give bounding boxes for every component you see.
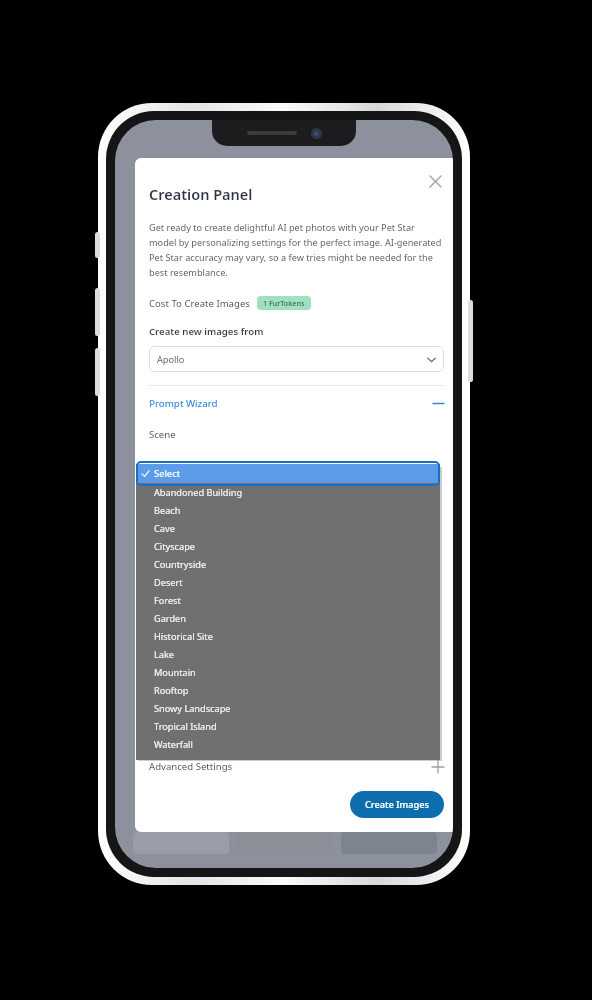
staticText: Scene (149, 428, 176, 441)
button[interactable]: Lake (136, 645, 440, 663)
staticText: Waterfall (154, 738, 193, 751)
staticText: Create Images (365, 798, 429, 811)
staticText: Countryside (154, 558, 207, 571)
staticText: Create new images from (149, 325, 264, 338)
staticText: Lake (154, 648, 175, 661)
button[interactable]: Tropical Island (136, 717, 440, 735)
staticText: Apollo (157, 353, 185, 366)
staticText: Garden (154, 612, 186, 625)
staticText: Forest (154, 594, 181, 607)
button[interactable]: Desert (136, 573, 440, 591)
staticText: Cityscape (154, 540, 195, 553)
staticText: 1 FurTokens (263, 298, 305, 308)
button[interactable]: Waterfall (136, 735, 440, 753)
staticText: Select (154, 467, 181, 480)
button[interactable]: Advanced Settings (149, 760, 444, 773)
button[interactable]: Countryside (136, 555, 440, 573)
button[interactable]: Apollo (149, 346, 444, 372)
staticText: Abandoned Building (154, 486, 243, 499)
staticText: Desert (154, 576, 183, 589)
button[interactable]: Snowy Landscape (136, 699, 440, 717)
staticText: Creation Panel (149, 184, 253, 204)
button[interactable]: Mountain (136, 663, 440, 681)
button[interactable]: Prompt Wizard (149, 397, 444, 410)
staticText: Cost To Create Images (149, 297, 250, 310)
button[interactable]: Rooftop (136, 681, 440, 699)
staticText: Snowy Landscape (154, 702, 231, 715)
staticText: Historical Site (154, 630, 213, 643)
staticText: Tropical Island (154, 720, 217, 733)
staticText: Get ready to create delightful AI pet ph… (149, 221, 444, 279)
staticText: Advanced Settings (149, 760, 233, 773)
button[interactable]: Forest (136, 591, 440, 609)
button[interactable]: Select (136, 464, 440, 483)
button[interactable]: Create Images (350, 791, 444, 818)
staticText: Prompt Wizard (149, 397, 218, 410)
button[interactable]: Close (420, 166, 450, 196)
staticText: Mountain (154, 666, 196, 679)
button[interactable]: Cityscape (136, 537, 440, 555)
button[interactable]: Cave (136, 519, 440, 537)
staticText: Rooftop (154, 684, 189, 697)
button[interactable]: Beach (136, 501, 440, 519)
button[interactable]: Garden (136, 609, 440, 627)
staticText: Beach (154, 504, 181, 517)
staticText: Cave (154, 522, 175, 535)
button[interactable]: Historical Site (136, 627, 440, 645)
button[interactable]: Abandoned Building (136, 483, 440, 501)
